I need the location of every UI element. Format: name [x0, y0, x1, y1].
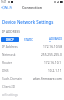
button[interactable]: Back — [0, 5, 14, 10]
button[interactable]: Such-Domain — [0, 75, 64, 83]
staticText: STATIC — [24, 38, 34, 42]
staticText: wlan.firmware.com — [33, 77, 62, 81]
button[interactable]: DNS — [0, 67, 64, 75]
staticText: Connection — [22, 5, 42, 10]
staticText: 10.2.1.11 — [48, 69, 62, 73]
staticText: DNS — [2, 69, 9, 73]
button[interactable]: DHCP — [1, 37, 19, 42]
staticText: ADVANCED — [49, 37, 63, 42]
button[interactable]: Netmask — [0, 51, 64, 59]
staticText: IP Address — [2, 45, 18, 49]
staticText: Device Network Settings — [2, 19, 54, 25]
staticText: Client-ID — [2, 85, 16, 89]
button[interactable]: STATIC — [22, 37, 35, 42]
staticText: Netmask — [2, 53, 16, 57]
staticText: 255.255.255.0 — [41, 53, 62, 57]
other: Back — [1, 6, 4, 9]
staticText: Wi-Fi — [4, 5, 13, 10]
staticText: 9:41 — [1, 0, 7, 4]
button[interactable]: IP Address — [0, 43, 64, 51]
staticText: 172.16.10.58 — [43, 45, 62, 49]
staticText: wifi settings — [2, 93, 18, 97]
staticText: Such-Domain — [2, 77, 23, 81]
staticText: Router — [2, 61, 13, 65]
button[interactable]: Client-ID — [0, 83, 64, 91]
staticText: DHCP — [6, 38, 14, 42]
button[interactable]: ADVANCED — [49, 37, 63, 42]
staticText: 172.16.10.1 — [44, 61, 62, 65]
button[interactable]: Router — [0, 59, 64, 67]
staticText: IP ADDRESS — [2, 30, 20, 34]
